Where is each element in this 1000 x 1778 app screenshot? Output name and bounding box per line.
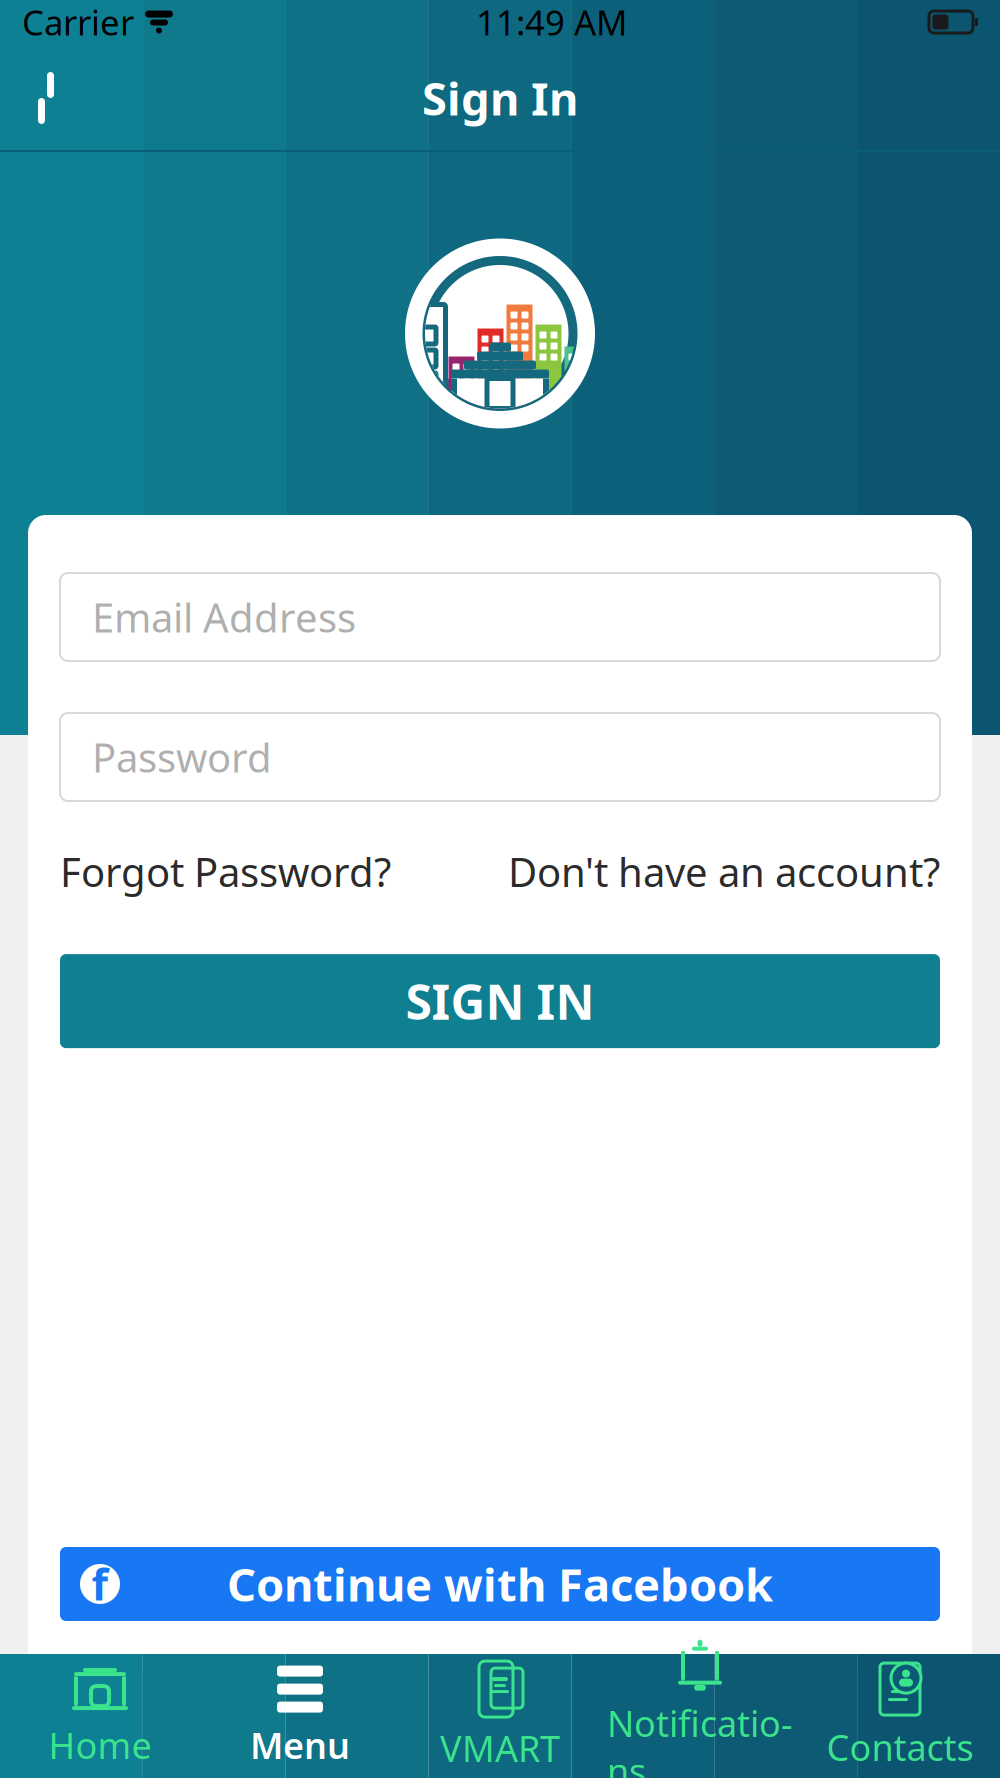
button[interactable]: Menu: [200, 1655, 400, 1777]
button[interactable]: Don't have an account?: [508, 845, 940, 898]
button[interactable]: Back: [14, 66, 78, 130]
staticText: Notifications: [607, 1699, 793, 1778]
staticText: Home: [48, 1721, 151, 1769]
staticText: Forgot Password?: [60, 845, 391, 898]
staticText: Continue with Facebook: [227, 1554, 773, 1614]
staticText: SIGN IN: [405, 969, 594, 1033]
button[interactable]: VMART: [400, 1655, 600, 1777]
staticText: Password: [92, 730, 272, 783]
button[interactable]: Notifications: [600, 1655, 800, 1777]
staticText: 11:49 AM: [476, 0, 627, 45]
button[interactable]: Email Address: [60, 573, 940, 661]
staticText: VMART: [440, 1724, 560, 1772]
button[interactable]: Contacts: [800, 1655, 1000, 1777]
staticText: Sign In: [422, 68, 578, 128]
button[interactable]: Continue with Facebook: [60, 1547, 940, 1621]
button[interactable]: Forgot Password?: [60, 845, 391, 898]
staticText: Contacts: [826, 1723, 973, 1771]
button[interactable]: Password: [60, 713, 940, 801]
button[interactable]: SIGN IN: [60, 954, 940, 1048]
button[interactable]: Home: [0, 1655, 200, 1777]
staticText: Menu: [250, 1721, 350, 1769]
staticText: Email Address: [92, 590, 356, 643]
staticText: Carrier: [22, 0, 134, 45]
staticText: Don't have an account?: [508, 845, 940, 898]
staticText: f: [91, 1556, 108, 1612]
